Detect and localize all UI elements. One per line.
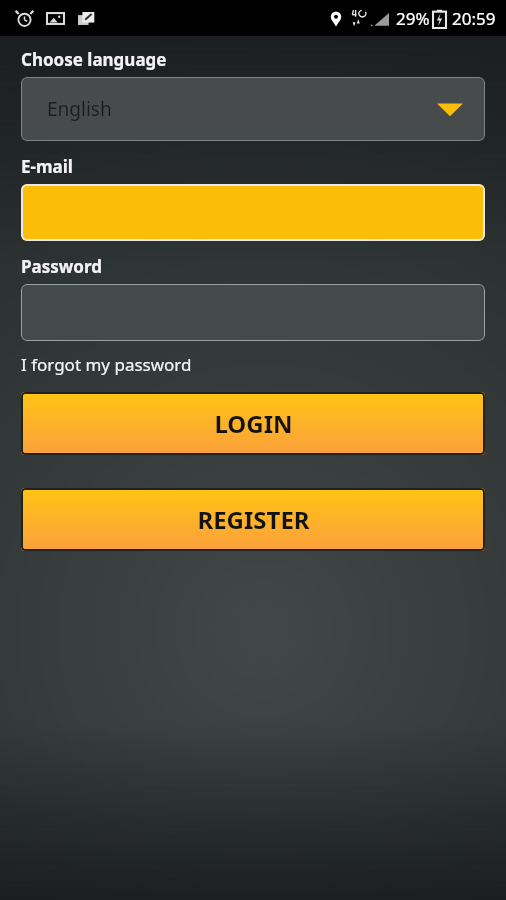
staticText: REGISTER [197,503,310,536]
staticText: LOGIN [214,407,293,440]
staticText: 20:59 [452,7,496,30]
button[interactable]: LOGIN [21,392,485,455]
staticText: E-mail [21,155,73,178]
staticText: Choose language [21,48,167,71]
staticText: English [47,96,112,122]
staticText: 29% [396,7,430,30]
button[interactable]: I forgot my password [21,353,192,376]
button[interactable]: English [21,77,485,141]
button[interactable]: REGISTER [21,488,485,551]
staticText: I forgot my password [21,353,192,376]
button[interactable]: E-mail input [21,184,485,241]
staticText: Password [21,255,102,278]
button[interactable]: Password input [21,284,485,341]
